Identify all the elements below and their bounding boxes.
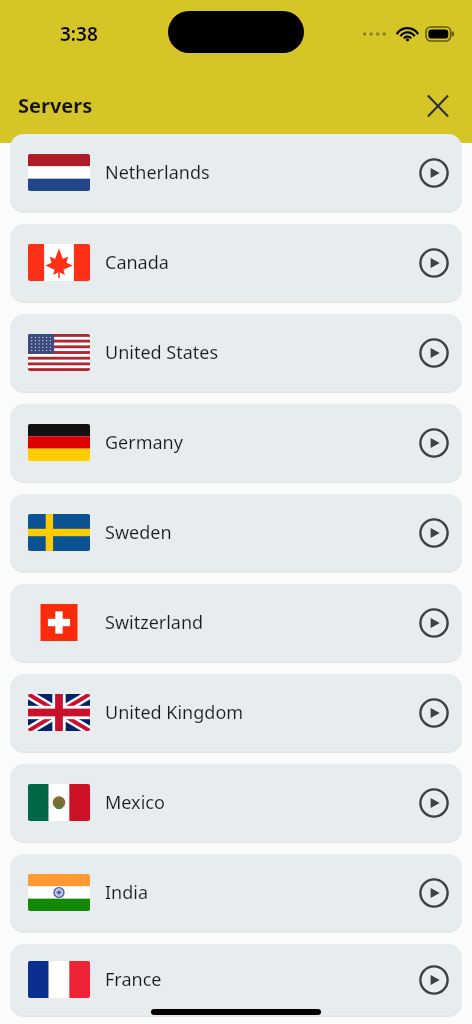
button[interactable]: France [10,944,462,1015]
button[interactable]: United Kingdom [10,674,462,751]
staticText: Switzerland [105,610,204,635]
staticText: India [105,880,149,905]
staticText: United Kingdom [105,700,244,725]
other: Connect to Switzerland [414,603,454,643]
staticText: Servers [18,92,93,119]
button[interactable]: Canada [10,224,462,301]
staticText: Sweden [105,520,172,545]
button[interactable]: Germany [10,404,462,481]
staticText: France [105,967,162,992]
other: Connect to India [414,873,454,913]
other: Connect to Netherlands [414,153,454,193]
button[interactable]: India [10,854,462,931]
button[interactable]: Mexico [10,764,462,841]
button[interactable]: Netherlands [10,134,462,211]
staticText: Mexico [105,790,165,815]
staticText: Netherlands [105,160,210,185]
other: Connect to Sweden [414,513,454,553]
staticText: Canada [105,250,169,275]
other: Connect to United Kingdom [414,693,454,733]
staticText: 3:38 [60,21,98,47]
staticText: United States [105,340,219,365]
staticText: Germany [105,430,183,455]
other: Connect to Mexico [414,783,454,823]
other: Connect to Germany [414,423,454,463]
button[interactable]: United States [10,314,462,391]
other: Connect to Canada [414,243,454,283]
other: Connect to France [414,960,454,1000]
button[interactable]: Sweden [10,494,462,571]
button[interactable]: Close [416,84,460,128]
other: Connect to United States [414,333,454,373]
button[interactable]: Switzerland [10,584,462,661]
